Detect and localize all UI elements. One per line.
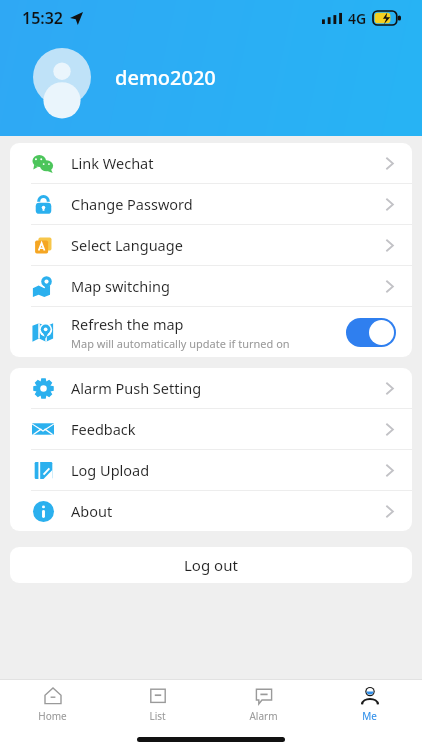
staticText: Change Password (71, 194, 193, 214)
staticText: Me (362, 709, 377, 723)
button[interactable]: List (105, 680, 210, 728)
staticText: Feedback (71, 419, 136, 439)
button[interactable]: Alarm Push Setting (10, 368, 412, 408)
button[interactable]: Log Upload (10, 450, 412, 490)
button[interactable]: Refresh the map toggle (346, 318, 396, 347)
button[interactable]: Link Wechat (10, 143, 412, 183)
button[interactable]: Map switching (10, 266, 412, 306)
button[interactable]: Alarm (210, 680, 316, 728)
staticText: 15:32 (22, 7, 64, 29)
staticText: Select Language (71, 235, 183, 255)
staticText: List (149, 709, 166, 723)
button[interactable]: Change Password (10, 184, 412, 224)
staticText: Map will automatically update if turned … (71, 336, 290, 351)
button[interactable]: Log out (10, 547, 412, 583)
staticText: Log out (184, 555, 238, 575)
button[interactable]: About (10, 491, 412, 531)
staticText: demo2020 (115, 64, 216, 91)
staticText: Alarm Push Setting (71, 378, 202, 398)
staticText: Refresh the map (71, 314, 184, 334)
staticText: Link Wechat (71, 153, 154, 173)
staticText: Log Upload (71, 460, 150, 480)
staticText: 4G (348, 9, 367, 28)
staticText: Home (38, 709, 67, 723)
staticText: Alarm (249, 709, 278, 723)
button[interactable]: Home (0, 680, 105, 728)
button[interactable]: Refresh the map (10, 307, 412, 357)
button[interactable]: Select Language (10, 225, 412, 265)
button[interactable]: Feedback (10, 409, 412, 449)
staticText: Map switching (71, 276, 170, 296)
button[interactable]: Me (316, 680, 422, 728)
staticText: About (71, 501, 113, 521)
